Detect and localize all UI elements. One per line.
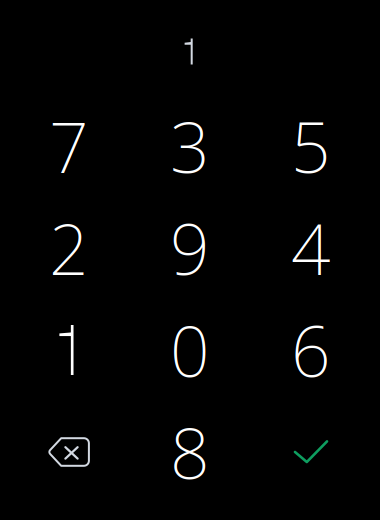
button[interactable]: 5 — [250, 95, 371, 197]
button[interactable]: 2 — [8, 197, 129, 299]
staticText: 7 — [49, 100, 89, 192]
staticText: 5 — [291, 100, 331, 192]
staticText: 6 — [291, 304, 331, 396]
button[interactable]: 0 — [129, 299, 250, 401]
staticText: 4 — [291, 202, 331, 294]
button[interactable]: 1 — [8, 299, 129, 401]
button[interactable]: 4 — [250, 197, 371, 299]
button[interactable]: 7 — [8, 95, 129, 197]
staticText: 0 — [170, 304, 210, 396]
button[interactable]: Delete — [8, 401, 129, 503]
button[interactable]: 6 — [250, 299, 371, 401]
staticText: 3 — [170, 100, 210, 192]
button[interactable]: 9 — [129, 197, 250, 299]
button[interactable]: 8 — [129, 401, 250, 503]
button[interactable]: 3 — [129, 95, 250, 197]
staticText: 8 — [170, 406, 210, 498]
button[interactable]: Confirm — [250, 401, 371, 503]
staticText: 2 — [49, 202, 89, 294]
staticText: 9 — [170, 202, 210, 294]
